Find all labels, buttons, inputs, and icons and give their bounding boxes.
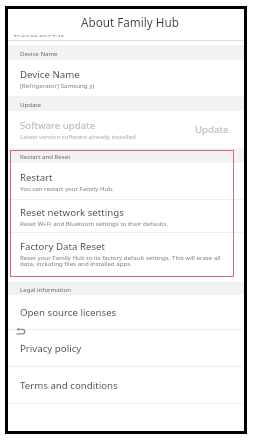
button[interactable]: Privacy policy [8, 330, 244, 366]
button[interactable]: Restart [8, 163, 244, 199]
staticText: Reset Wi-Fi and Bluetooth settings to th… [20, 219, 169, 227]
staticText: Privacy policy [20, 342, 82, 355]
button[interactable]: Device Name [8, 60, 244, 96]
staticText: 7C:64:56:89:C7:25 [13, 35, 65, 37]
staticText: Device Name [20, 49, 58, 57]
staticText: Factory Data Reset [20, 240, 105, 253]
staticText: Update [20, 100, 42, 108]
staticText: Software update [20, 119, 96, 132]
staticText: Latest version software already installe… [20, 132, 136, 140]
button[interactable]: Terms and conditions [8, 367, 244, 403]
other: Back [15, 326, 26, 337]
button[interactable]: Update [185, 117, 244, 142]
staticText: Legal information [20, 285, 71, 293]
staticText: About Family Hub [81, 14, 179, 30]
staticText: Update [195, 123, 229, 136]
staticText: You can restart your Family Hub. [20, 184, 114, 192]
staticText: Terms and conditions [20, 379, 118, 392]
staticText: Restart and Reset [20, 152, 71, 160]
staticText: Reset your Family Hub to its factory def… [20, 253, 221, 268]
staticText: [Refrigerator] Samsung y) [20, 81, 95, 89]
staticText: Reset network settings [20, 206, 124, 219]
staticText: Restart [20, 171, 53, 184]
button[interactable]: Reset network settings [8, 200, 244, 232]
staticText: Device Name [20, 68, 80, 81]
button[interactable]: Factory Data Reset [8, 233, 244, 274]
button[interactable]: Open source licenses [8, 295, 244, 329]
staticText: Open source licenses [20, 306, 117, 319]
